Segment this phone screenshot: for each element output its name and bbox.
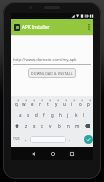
button[interactable]: b [55,120,64,131]
staticText: l [83,112,85,118]
staticText: h [59,112,62,118]
button[interactable]: n [64,120,73,131]
button[interactable]: k [72,109,80,120]
button[interactable]: o [76,98,84,109]
staticText: j [67,112,69,118]
staticText: q [15,101,18,107]
button[interactable]: y [52,98,60,109]
staticText: . [69,136,71,142]
staticText: o [79,101,82,107]
button[interactable]: l [80,109,88,120]
staticText: t [47,101,49,107]
button[interactable]: DOWNLOAD & INSTALL [28,68,76,78]
button[interactable]: http://www.domain.com/my.apk [13,54,91,66]
button[interactable]: s [24,109,32,120]
staticText: d [35,112,38,118]
staticText: u [63,101,66,107]
staticText: f [43,112,45,118]
staticText: p [87,101,90,107]
button[interactable] [62,147,81,160]
button[interactable]: a [16,109,24,120]
button[interactable] [85,19,93,35]
button[interactable] [43,147,62,160]
staticText: y [55,101,58,107]
button[interactable]: e [28,98,36,109]
staticText: m [75,123,80,129]
button[interactable] [30,136,66,143]
button[interactable]: r [36,98,44,109]
button[interactable]: j [64,109,72,120]
button[interactable] [82,120,92,131]
button[interactable]: z [22,120,30,131]
staticText: s [27,112,30,118]
button[interactable]: d [32,109,40,120]
button[interactable]: , [22,132,30,145]
button[interactable]: ?123 [11,132,22,145]
button[interactable]: i [68,98,76,109]
button[interactable]: v [46,120,55,131]
button[interactable] [84,135,93,144]
button[interactable]: m [73,120,82,131]
staticText: b [58,123,61,129]
button[interactable]: g [48,109,56,120]
button[interactable]: x [30,120,38,131]
staticText: ?123 [13,137,20,141]
staticText: x [33,123,36,129]
button[interactable]: h [56,109,64,120]
staticText: z [25,123,28,129]
staticText: k [75,112,78,118]
button[interactable]: . [66,132,74,145]
button[interactable]: q [12,98,20,109]
staticText: n [67,123,70,129]
button[interactable]: f [40,109,48,120]
button[interactable]: w [20,98,28,109]
staticText: r [39,101,41,107]
staticText: e [31,101,34,107]
button[interactable]: c [38,120,46,131]
button[interactable] [12,120,22,131]
staticText: c [41,123,44,129]
staticText: a [19,112,22,118]
staticText: i [71,101,73,107]
staticText: g [51,112,54,118]
button[interactable]: t [44,98,52,109]
button[interactable]: p [84,98,92,109]
staticText: w [22,101,26,107]
staticText: v [49,123,52,129]
staticText: http://www.domain.com/my.apk [13,57,77,63]
button[interactable]: u [60,98,68,109]
staticText: DOWNLOAD & INSTALL [31,71,73,76]
button[interactable] [24,147,43,160]
staticText: , [25,136,27,142]
staticText: APK Installer [22,24,50,30]
